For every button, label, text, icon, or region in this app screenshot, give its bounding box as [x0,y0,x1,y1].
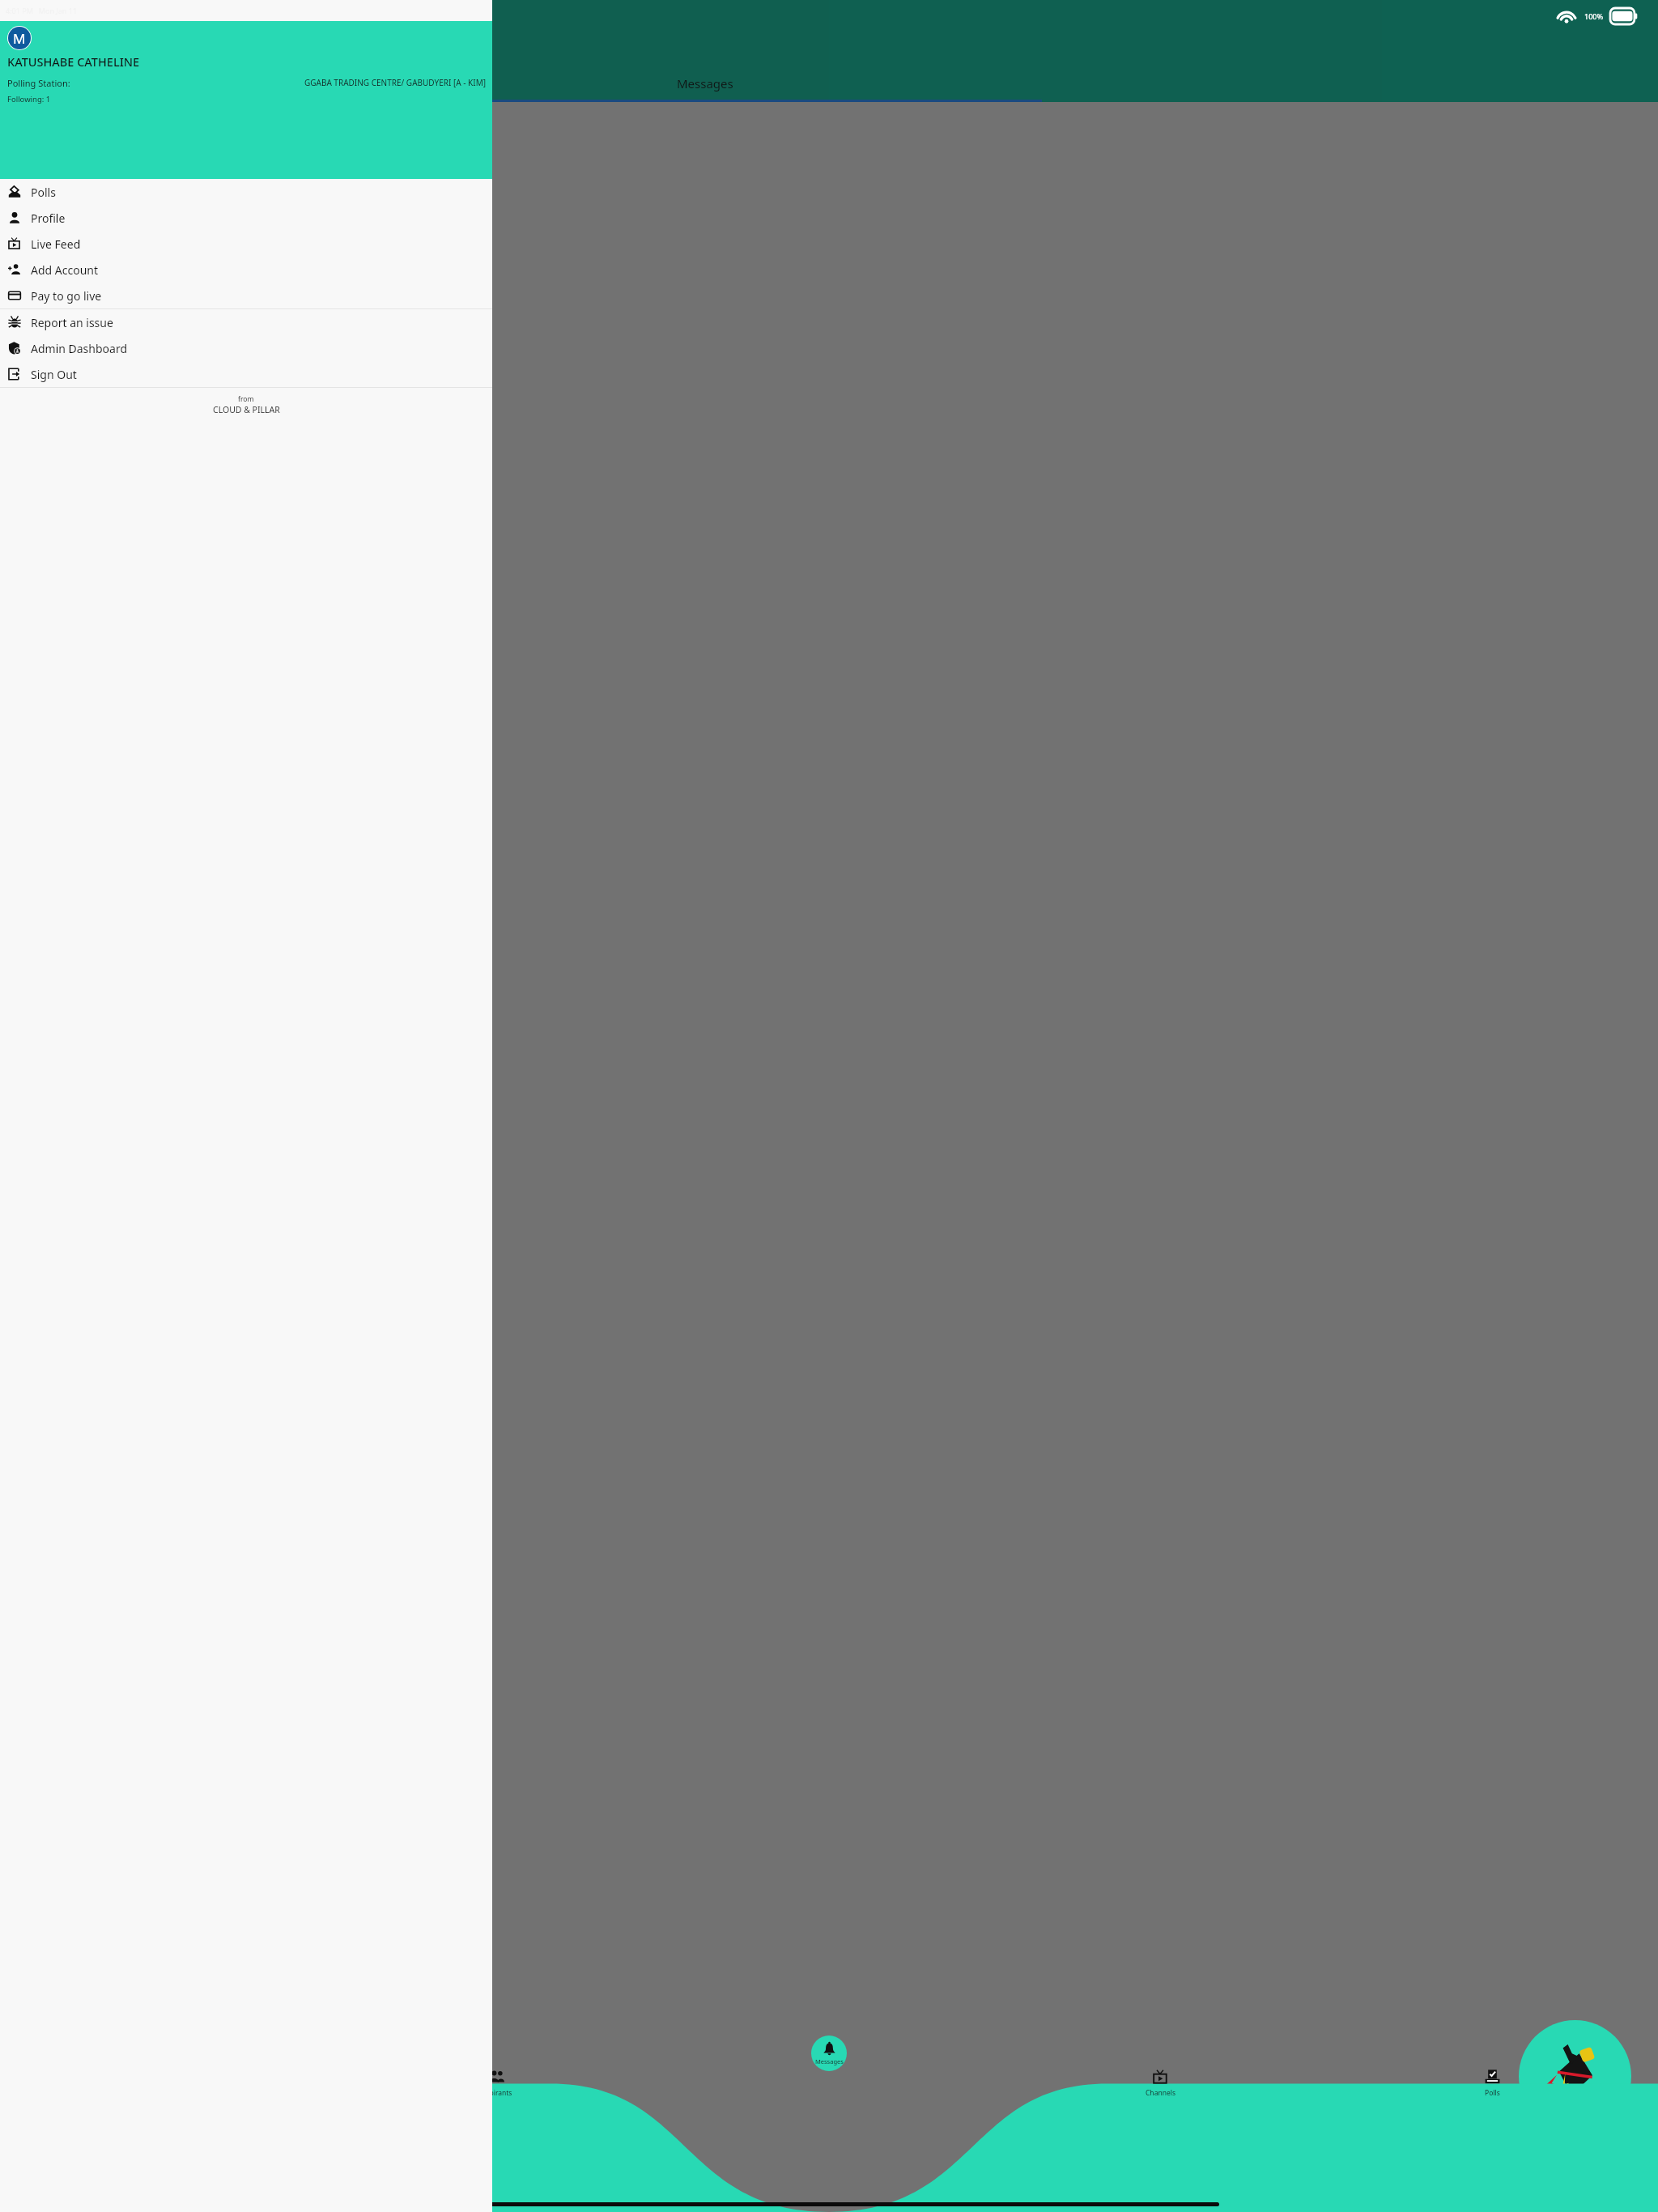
button[interactable]: Polls [1326,2057,1658,2212]
staticText: 100% [1584,11,1604,21]
button[interactable]: Admin Dashboard [0,335,492,361]
staticText: CLOUD & PILLAR [213,404,280,415]
button[interactable]: Broadcast [1519,2020,1631,2133]
staticText: GGABA TRADING CENTRE/ GABUDYERI [A - KIM… [73,77,486,88]
staticText: Following: 1 [7,94,51,104]
staticText: Add Account [31,262,99,278]
staticText: Sign Out [31,367,77,382]
staticText: Pay to go live [31,288,102,304]
staticText: Messages [677,75,733,91]
button[interactable]: Pay to go live [0,283,492,308]
staticText: Polling Station: [7,77,73,89]
button[interactable]: Live Feed [0,231,492,257]
button[interactable]: Channels [994,2057,1326,2212]
staticText: Admin Dashboard [31,341,128,356]
staticText: Live Feed [31,236,81,252]
button[interactable]: Messages [811,2035,847,2071]
staticText: Report an issue [31,315,113,330]
staticText: Aspirants [482,2088,512,2098]
staticText: M [13,29,26,48]
button[interactable]: Aspirants [331,2057,662,2212]
button[interactable]: Add Account [0,257,492,283]
staticText: Polls [31,185,56,200]
staticText: from [238,394,254,404]
staticText: Profile [31,211,66,226]
button[interactable]: Profile [0,205,492,231]
staticText: Channels [1146,2088,1175,2098]
button[interactable]: Polls [0,179,492,205]
staticText: KATUSHABE CATHELINE [7,53,140,70]
button[interactable]: Sign Out [0,361,492,387]
button[interactable]: Report an issue [0,309,492,335]
staticText: Polls [1485,2088,1500,2098]
staticText: Messages [815,2057,844,2065]
